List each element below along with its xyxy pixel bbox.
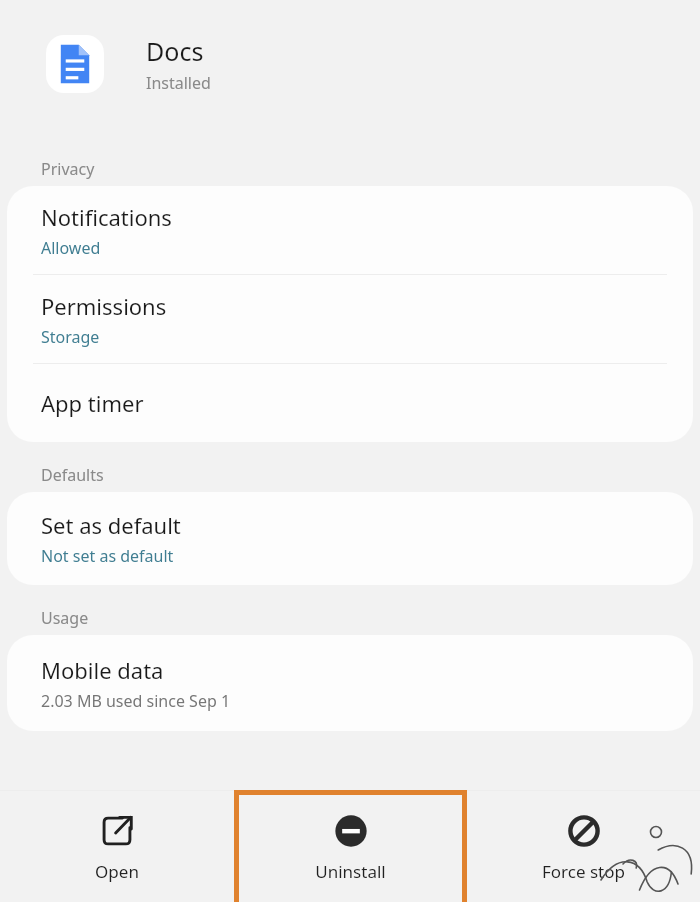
staticText: Uninstall bbox=[315, 860, 386, 883]
other: Force stop bbox=[567, 814, 601, 848]
staticText: Defaults bbox=[41, 464, 104, 486]
staticText: Mobile data bbox=[41, 655, 164, 685]
staticText: App timer bbox=[41, 388, 144, 418]
button[interactable]: Set as default bbox=[7, 492, 693, 585]
staticText: Set as default bbox=[41, 510, 181, 540]
button[interactable]: App timer bbox=[7, 364, 693, 442]
staticText: Allowed bbox=[41, 237, 101, 259]
button[interactable]: Force stop bbox=[467, 790, 700, 902]
button[interactable]: Notifications bbox=[7, 186, 693, 274]
other: Uninstall bbox=[334, 814, 368, 848]
staticText: Installed bbox=[146, 72, 211, 94]
other: Open bbox=[100, 814, 134, 848]
staticText: Usage bbox=[41, 607, 89, 629]
staticText: Force stop bbox=[542, 860, 625, 883]
staticText: Not set as default bbox=[41, 545, 174, 567]
staticText: Privacy bbox=[41, 158, 95, 180]
staticText: 2.03 MB used since Sep 1 bbox=[41, 690, 231, 712]
staticText: Storage bbox=[41, 326, 100, 348]
staticText: Docs bbox=[146, 34, 204, 68]
button[interactable]: Mobile data bbox=[7, 635, 693, 731]
staticText: Open bbox=[95, 860, 139, 883]
button[interactable]: Open bbox=[0, 790, 234, 902]
staticText: Notifications bbox=[41, 202, 172, 232]
staticText: Permissions bbox=[41, 291, 167, 321]
button[interactable]: Permissions bbox=[7, 275, 693, 363]
button[interactable]: Uninstall bbox=[234, 790, 467, 902]
